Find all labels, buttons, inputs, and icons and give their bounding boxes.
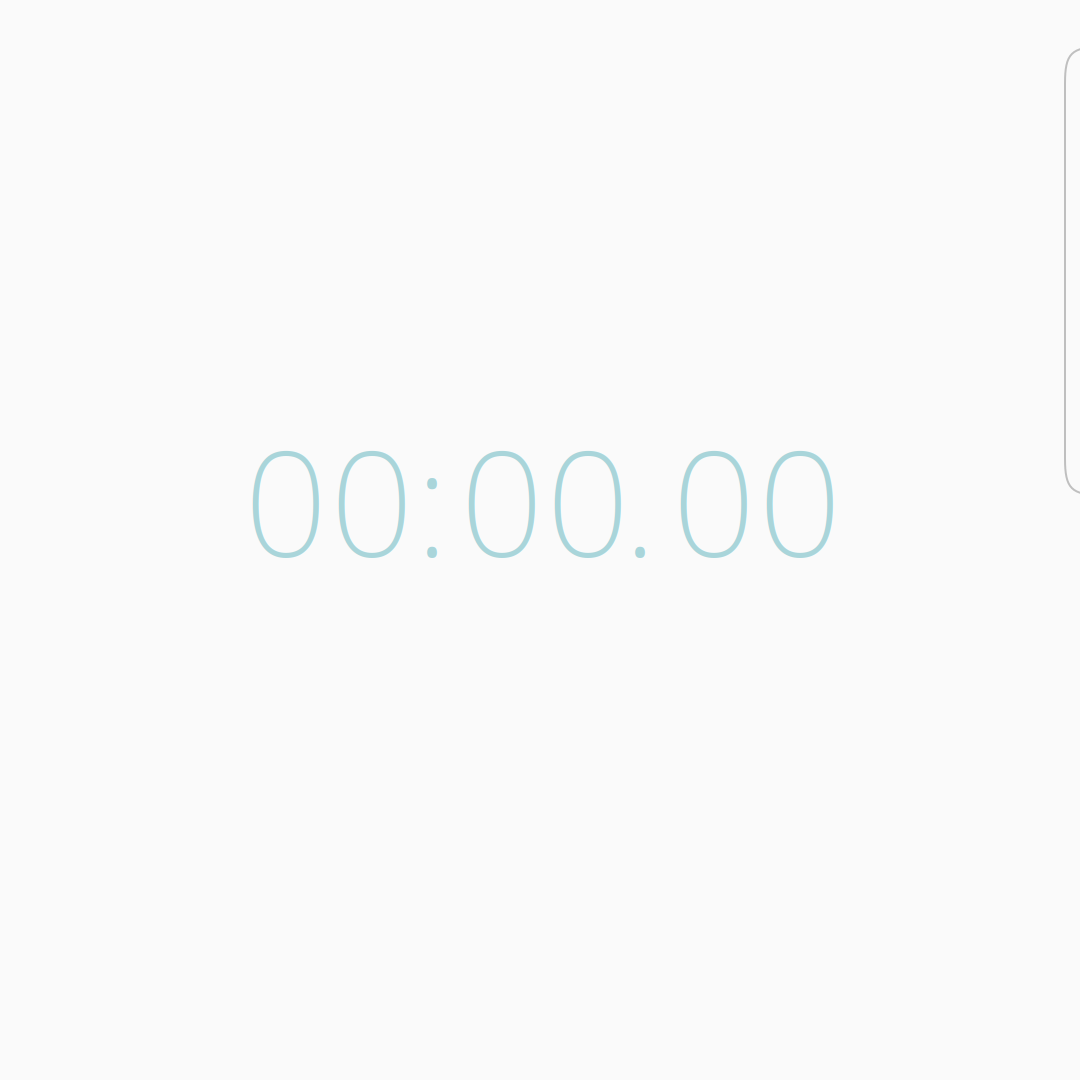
staticText: 0 <box>758 403 842 597</box>
button[interactable]: Elapsed time 00:00.00. Start <box>3 0 1080 1040</box>
staticText: 0 <box>244 403 328 597</box>
staticText: 0 <box>330 403 414 597</box>
staticText: : <box>415 403 449 597</box>
staticText: 0 <box>460 403 544 597</box>
staticText: 0 <box>672 403 756 597</box>
staticText: 0 <box>546 403 630 597</box>
staticText: . <box>623 403 657 597</box>
